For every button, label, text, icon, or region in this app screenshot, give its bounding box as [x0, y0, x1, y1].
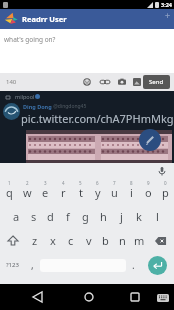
button[interactable]: y	[89, 180, 106, 204]
button[interactable]: d	[42, 204, 59, 228]
button[interactable]	[33, 292, 42, 302]
staticText: w	[23, 185, 32, 200]
staticText: y	[95, 185, 101, 200]
button[interactable]: Send	[143, 75, 170, 89]
staticText: z	[32, 233, 38, 248]
staticText: ?123	[6, 261, 19, 269]
button[interactable]: b	[97, 228, 114, 253]
staticText: 6	[96, 180, 99, 186]
staticText: h	[100, 209, 107, 224]
staticText: 140	[6, 78, 17, 86]
staticText: 3:24	[161, 1, 172, 8]
button[interactable]: ,	[24, 253, 40, 277]
staticText: u	[111, 185, 118, 200]
staticText: p	[162, 185, 169, 200]
staticText: n	[119, 233, 126, 248]
button[interactable]: t	[72, 180, 89, 204]
staticText: pic.twitter.com/chA7PHmMkg	[21, 111, 174, 126]
button[interactable]: r	[54, 180, 72, 204]
staticText: x	[50, 233, 56, 248]
button[interactable]: x	[44, 228, 62, 253]
button[interactable]	[83, 78, 91, 86]
staticText: c	[68, 233, 74, 248]
staticText: 3	[44, 180, 47, 186]
button[interactable]: l	[148, 204, 166, 228]
staticText: v	[86, 233, 92, 248]
button[interactable]: o	[140, 180, 157, 204]
button[interactable]: a	[8, 204, 25, 228]
button[interactable]	[159, 167, 165, 176]
button[interactable]: g	[76, 204, 94, 228]
button[interactable]: k	[130, 204, 148, 228]
staticText: 5	[79, 180, 82, 186]
staticText: q	[6, 185, 13, 200]
button[interactable]: q	[0, 180, 18, 204]
staticText: 8	[130, 180, 133, 186]
button[interactable]	[148, 228, 174, 253]
button[interactable]	[84, 292, 94, 302]
staticText: o	[145, 185, 152, 200]
staticText: 0	[164, 180, 167, 186]
button[interactable]: p	[157, 180, 174, 204]
staticText: t	[79, 185, 83, 200]
staticText: j	[120, 209, 123, 224]
button[interactable]: what's going on?	[0, 29, 174, 73]
staticText: a	[13, 209, 20, 224]
button[interactable]	[133, 78, 141, 86]
button[interactable]: Readrr User	[0, 9, 174, 29]
staticText: e	[42, 185, 49, 200]
staticText: 7	[113, 180, 116, 186]
staticText: Send	[149, 78, 164, 86]
button[interactable]	[140, 253, 174, 277]
staticText: .	[132, 258, 135, 272]
staticText: r	[61, 185, 66, 200]
button[interactable]: s	[25, 204, 42, 228]
staticText: k	[136, 209, 142, 224]
button[interactable]: i	[123, 180, 140, 204]
button[interactable]: f	[59, 204, 76, 228]
staticText: +	[165, 9, 171, 21]
button[interactable]	[139, 129, 161, 151]
button[interactable]	[130, 292, 140, 302]
staticText: Readrr User	[22, 14, 67, 24]
button[interactable]	[157, 294, 169, 302]
button[interactable]	[100, 78, 110, 86]
staticText: 1	[8, 180, 11, 186]
button[interactable]: h	[94, 204, 112, 228]
staticText: d	[47, 209, 54, 224]
button[interactable]	[0, 228, 26, 253]
button[interactable]: .	[126, 253, 140, 277]
button[interactable]	[118, 78, 126, 86]
button[interactable]: j	[112, 204, 130, 228]
staticText: f	[66, 209, 70, 224]
button[interactable]: u	[106, 180, 123, 204]
button[interactable]: c	[62, 228, 80, 253]
staticText: b	[102, 233, 109, 248]
staticText: what's going on?	[4, 35, 56, 44]
button[interactable]: m	[131, 228, 148, 253]
button[interactable]: v	[80, 228, 97, 253]
staticText: ,	[31, 258, 34, 272]
button[interactable]: e	[36, 180, 54, 204]
button[interactable]: ?123	[0, 253, 24, 277]
staticText: m	[134, 233, 145, 248]
staticText: s	[31, 209, 37, 224]
staticText: 4	[62, 180, 65, 186]
button[interactable]: z	[26, 228, 44, 253]
button[interactable]: w	[18, 180, 36, 204]
staticText: 2	[26, 180, 29, 186]
staticText: 9	[147, 180, 150, 186]
staticText: g	[82, 209, 89, 224]
staticText: Ding Dong	[23, 103, 52, 110]
staticText: l	[156, 209, 159, 224]
staticText: milpool	[15, 93, 35, 100]
staticText: @dingdong45	[52, 103, 87, 110]
button[interactable]: n	[114, 228, 131, 253]
staticText: i	[130, 185, 133, 200]
